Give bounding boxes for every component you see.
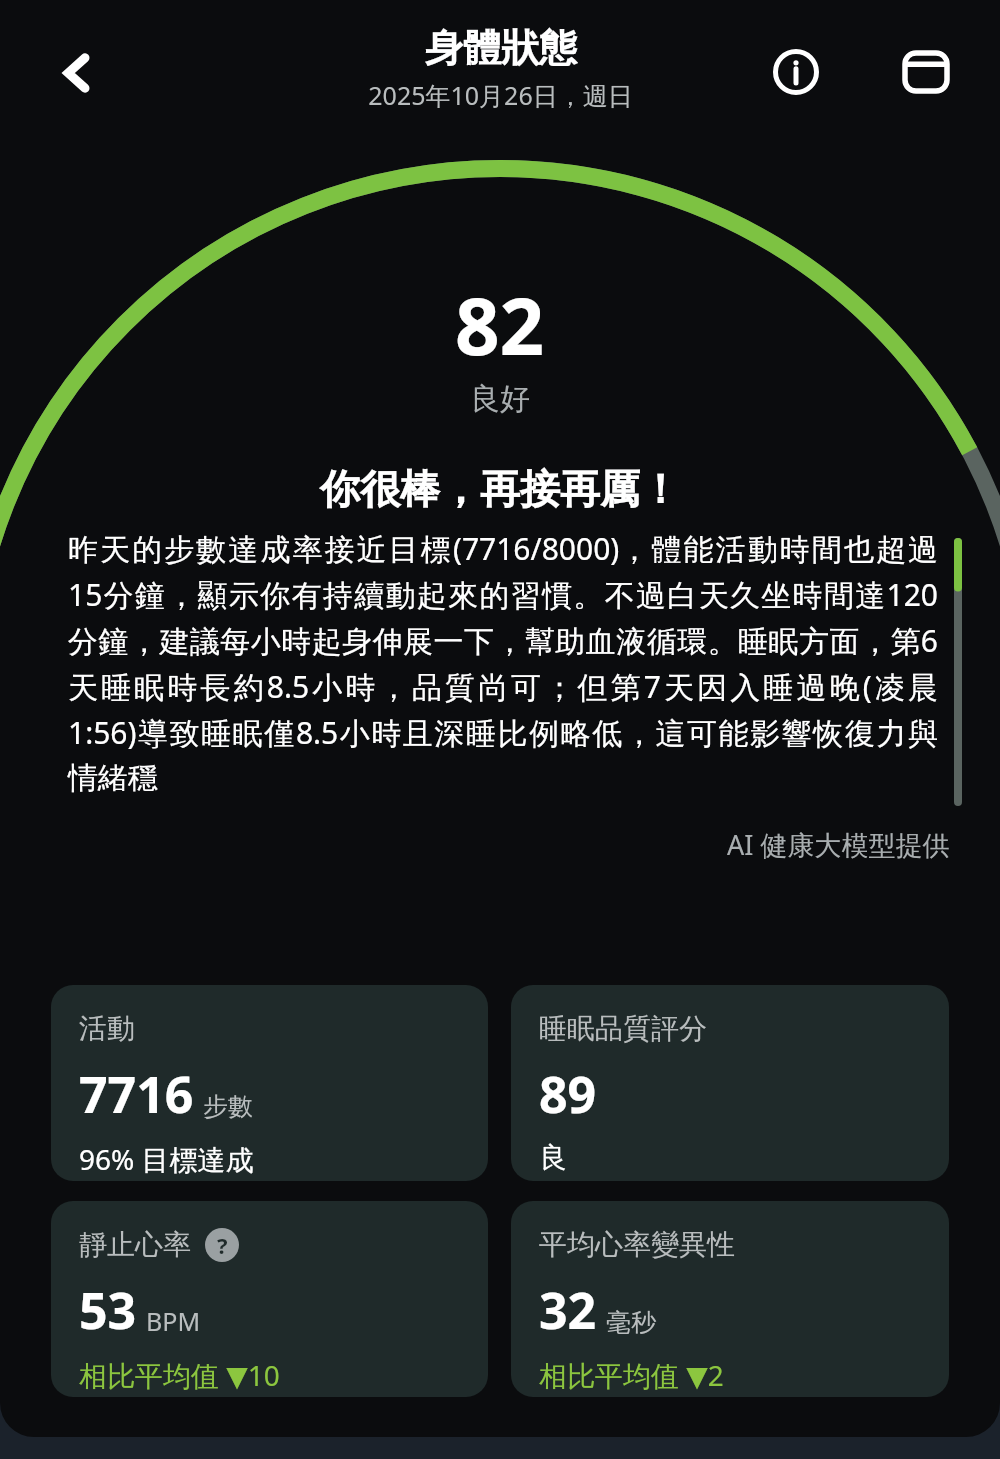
staticText: 睡眠品質評分	[539, 1011, 707, 1046]
staticText: 身體狀態	[425, 24, 577, 72]
staticText: ?	[217, 1230, 228, 1260]
staticText: 步數	[203, 1091, 253, 1122]
staticText: 昨天的步數達成率接近目標 (7716/8000)，體能活動時間也超過 15 分鐘…	[68, 528, 938, 797]
staticText: 相比平均值 ▼2	[539, 1356, 724, 1394]
staticText: 活動	[79, 1011, 135, 1046]
staticText: AI 健康大模型提供	[727, 826, 950, 863]
button[interactable]: 睡眠品質評分	[511, 985, 949, 1181]
staticText: BPM	[146, 1304, 201, 1338]
staticText: 良	[539, 1140, 567, 1175]
button[interactable]: 活動	[51, 985, 488, 1181]
staticText: 89	[539, 1060, 597, 1128]
staticText: 82	[455, 272, 545, 378]
button[interactable]: Help	[205, 1228, 239, 1262]
staticText: 靜止心率	[79, 1227, 191, 1262]
button[interactable]: 靜止心率	[51, 1201, 488, 1397]
button[interactable]: Back	[34, 30, 120, 116]
staticText: 32	[539, 1276, 597, 1344]
staticText: 相比平均值 ▼10	[79, 1356, 280, 1394]
staticText: 平均心率變異性	[539, 1227, 735, 1262]
staticText: 毫秒	[606, 1307, 656, 1338]
staticText: 2025年10月26日，週日	[368, 78, 633, 112]
staticText: 96% 目標達成	[79, 1140, 254, 1178]
button[interactable]: 平均心率變異性	[511, 1201, 949, 1397]
button[interactable]: Calendar	[882, 28, 970, 116]
staticText: 7716	[79, 1060, 194, 1128]
staticText: 你很棒，再接再厲！	[320, 464, 680, 514]
button[interactable]: Information	[752, 28, 840, 116]
staticText: 53	[79, 1276, 137, 1344]
staticText: 良好	[470, 380, 530, 418]
